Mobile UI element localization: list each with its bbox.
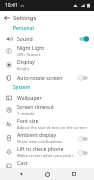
staticText: 10:41	[5, 2, 18, 9]
button[interactable]: Auto-rotate screen	[0, 72, 94, 83]
staticText: Font size	[17, 117, 39, 124]
button[interactable]: Wallpaper	[0, 92, 94, 103]
button[interactable]: Night Light	[0, 44, 94, 58]
staticText: Wallpaper	[17, 94, 42, 101]
button[interactable]: Display	[0, 58, 94, 72]
staticText: Lift to check phone	[17, 145, 64, 152]
staticText: Display	[17, 58, 35, 65]
staticText: System	[13, 84, 31, 91]
staticText: Wake screen when you pick it up	[17, 153, 77, 159]
button[interactable]: Screen timeout	[0, 103, 94, 117]
button[interactable]: Ambient display	[0, 131, 94, 145]
staticText: Personal	[13, 25, 34, 32]
staticText: Ambient display	[17, 131, 57, 138]
staticText: Show new notifications	[17, 139, 63, 145]
button[interactable]: Font size	[0, 117, 94, 131]
staticText: Settings	[13, 14, 37, 22]
button[interactable]: Off	[77, 134, 90, 143]
button[interactable]: Back	[0, 11, 13, 24]
button[interactable]: Off	[77, 148, 90, 157]
staticText: Night Light	[17, 44, 45, 51]
staticText: 1 minute	[17, 111, 35, 117]
staticText: Cast	[17, 159, 28, 166]
staticText: Off / Sunset	[17, 52, 41, 58]
staticText: Auto-rotate screen	[17, 74, 63, 81]
button[interactable]: Sound	[0, 33, 94, 44]
button[interactable]: Off	[77, 73, 90, 82]
button[interactable]: Recent apps	[68, 168, 80, 180]
staticText: Screen timeout	[17, 103, 54, 110]
button[interactable]: On	[77, 34, 90, 43]
button[interactable]: Home	[41, 168, 53, 180]
button[interactable]: Lift to check phone	[0, 145, 94, 159]
staticText: Adjust the size of text on the screen	[17, 125, 87, 131]
button[interactable]: Back	[15, 168, 27, 180]
staticText: Bright	[17, 66, 30, 72]
button[interactable]: Cast	[0, 159, 94, 168]
staticText: Sound	[17, 35, 33, 42]
